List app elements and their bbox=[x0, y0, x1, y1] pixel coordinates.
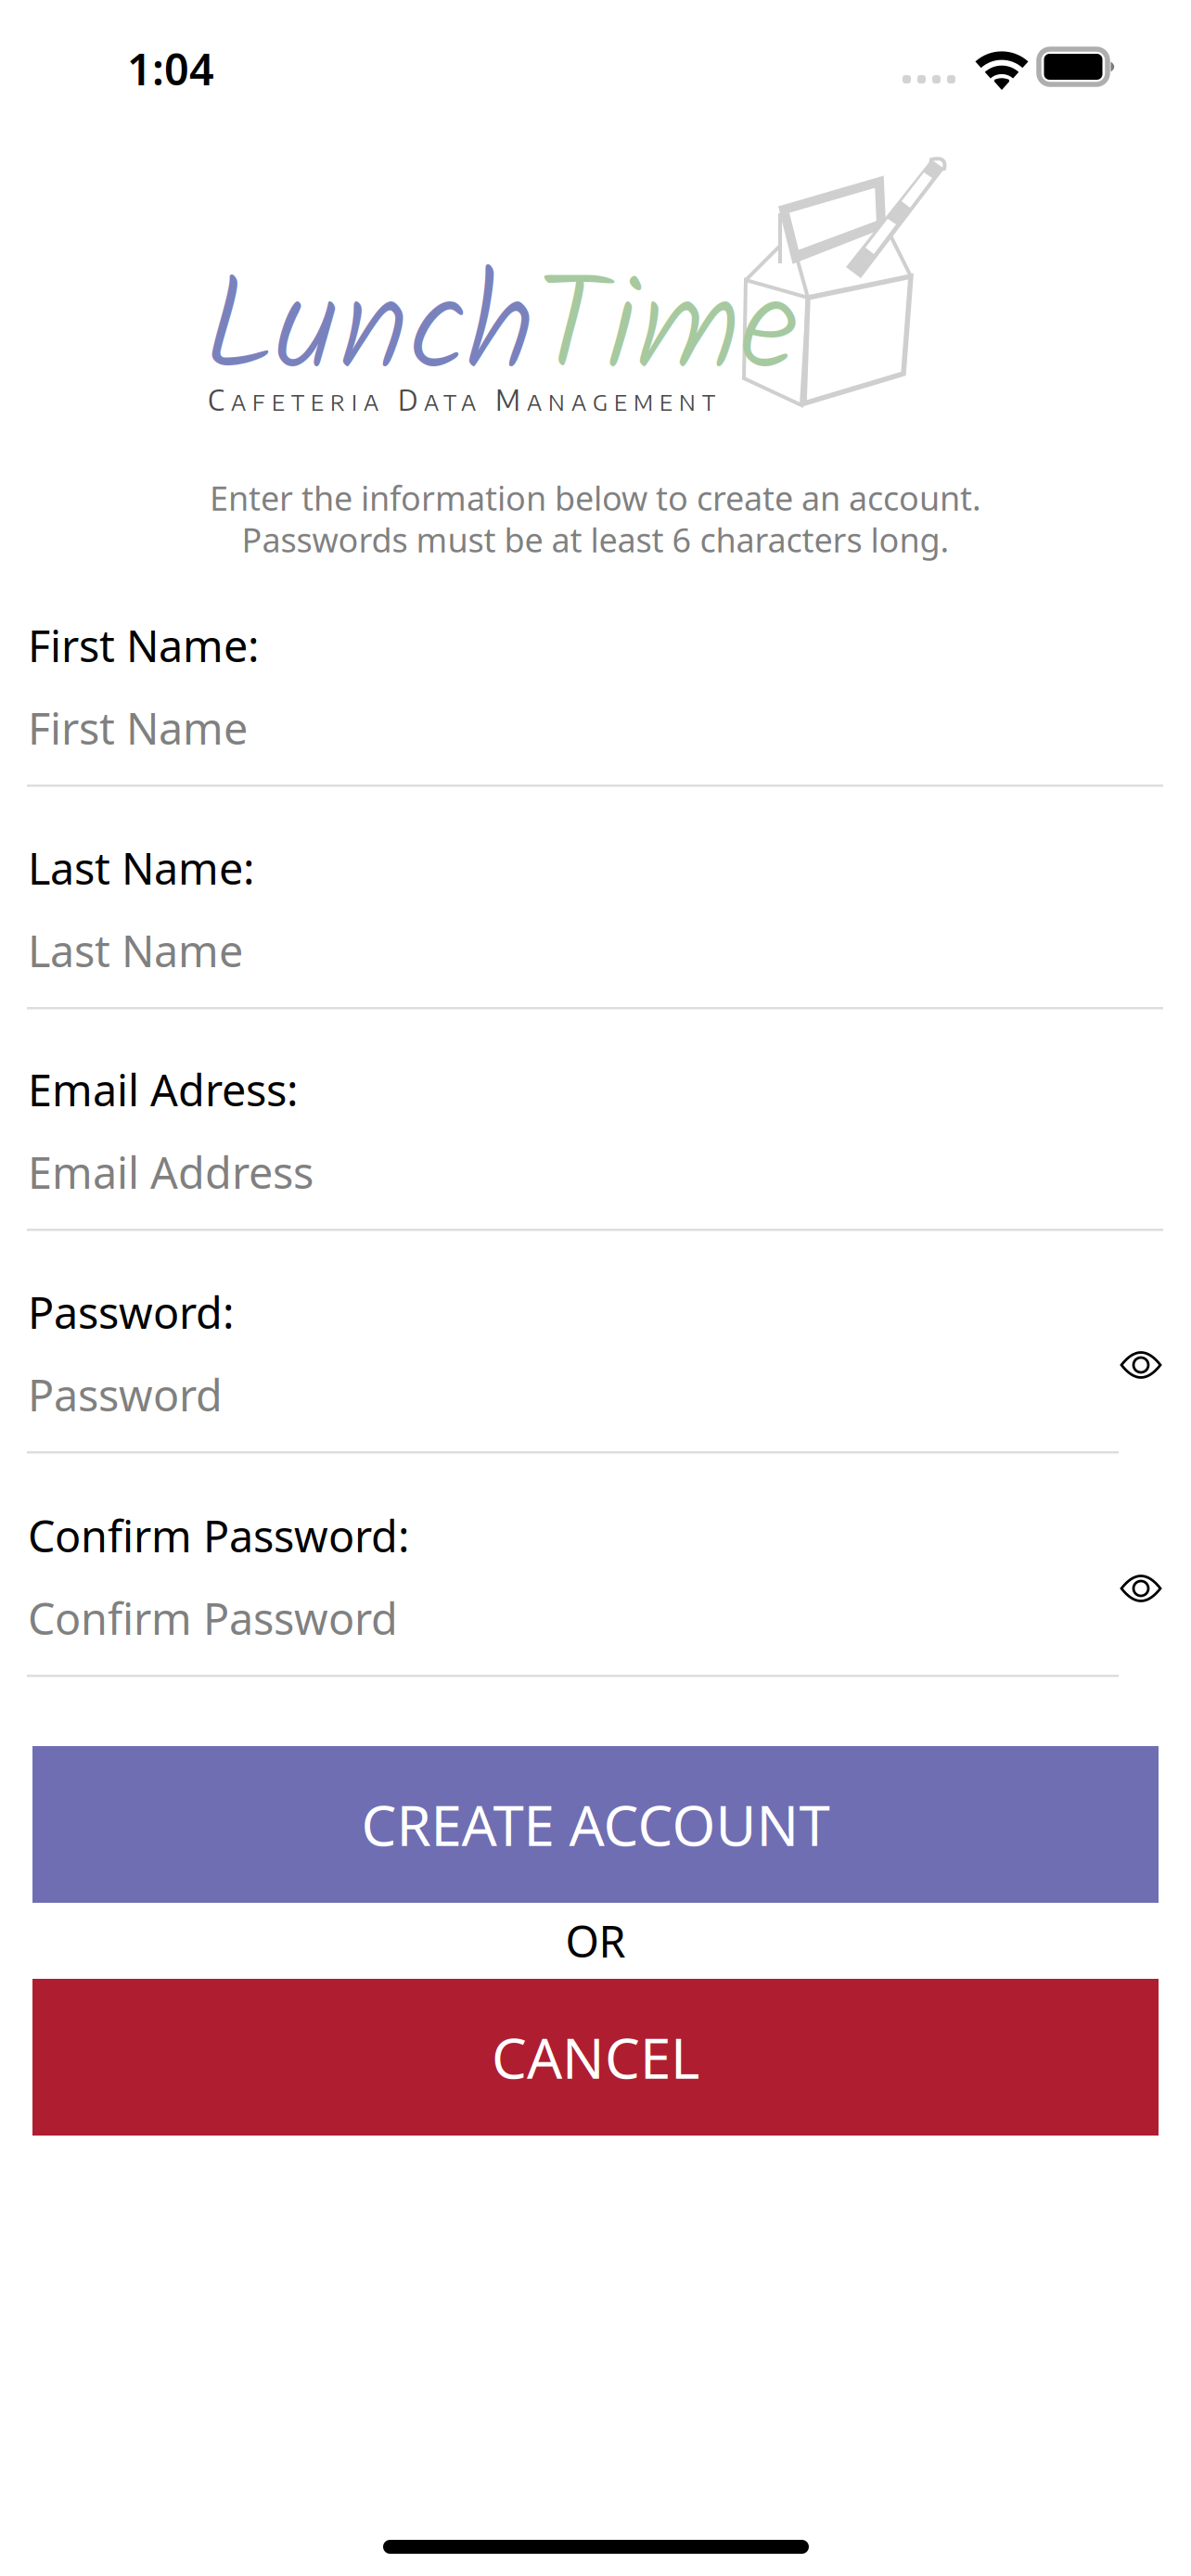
staticText: Lunch bbox=[202, 226, 535, 439]
staticText: Password: bbox=[28, 1283, 235, 1341]
staticText: Last Name bbox=[28, 922, 243, 979]
button[interactable]: Show password bbox=[1105, 1336, 1177, 1394]
staticText: Confirm Password bbox=[28, 1589, 398, 1647]
staticText: Email Adress: bbox=[28, 1061, 299, 1118]
staticText: Enter the information below to create an… bbox=[210, 476, 981, 520]
staticText: Last Name: bbox=[28, 839, 255, 897]
button[interactable]: Show password bbox=[1105, 1560, 1177, 1617]
staticText: CANCEL bbox=[492, 2020, 699, 2094]
staticText: Time bbox=[535, 226, 799, 439]
staticText: 1:04 bbox=[127, 40, 214, 97]
staticText: First Name: bbox=[28, 617, 260, 674]
staticText: First Name bbox=[28, 699, 248, 757]
staticText: CREATE ACCOUNT bbox=[361, 1788, 830, 1861]
staticText: Passwords must be at least 6 characters … bbox=[242, 517, 949, 562]
staticText: Confirm Password: bbox=[28, 1507, 410, 1564]
button[interactable]: CANCEL bbox=[32, 1979, 1159, 2136]
staticText: Email Address bbox=[28, 1143, 314, 1201]
staticText: CAFETERIA DATA MANAGEMENT bbox=[208, 382, 715, 417]
staticText: OR bbox=[565, 1912, 626, 1970]
button[interactable]: CREATE ACCOUNT bbox=[32, 1746, 1159, 1903]
staticText: Password bbox=[28, 1366, 223, 1423]
